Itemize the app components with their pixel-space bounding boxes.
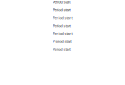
staticText: Period start — [52, 7, 70, 12]
staticText: Period start — [52, 31, 72, 36]
staticText: Period start — [52, 39, 71, 44]
staticText: Period start — [52, 47, 70, 52]
staticText: Period start — [52, 23, 70, 28]
staticText: Period start — [52, 0, 70, 4]
staticText: Period start — [52, 15, 72, 20]
